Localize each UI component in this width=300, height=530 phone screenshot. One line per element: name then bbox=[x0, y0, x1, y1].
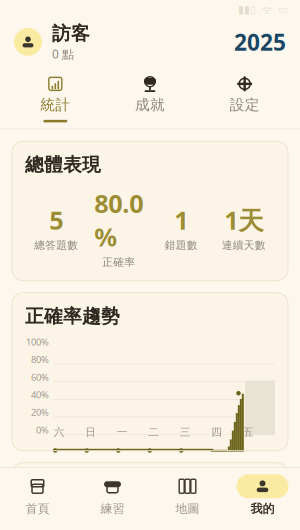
staticText: 2025 bbox=[234, 27, 286, 57]
staticText: 0 點 bbox=[52, 46, 74, 62]
staticText: 75% bbox=[251, 508, 275, 524]
staticText: 交通法規 bbox=[25, 507, 85, 525]
staticText: ▮▮▯ ᯤ ▭ bbox=[238, 2, 288, 16]
staticText: 五 bbox=[243, 426, 254, 439]
staticText: 正確率 bbox=[102, 256, 135, 269]
button[interactable]: 我的 bbox=[225, 468, 300, 516]
button[interactable]: 成就 bbox=[103, 70, 197, 128]
button[interactable]: 首頁 bbox=[0, 468, 75, 516]
staticText: 錯題數 bbox=[165, 239, 198, 252]
staticText: 一 bbox=[117, 426, 128, 439]
staticText: 總體表現 bbox=[25, 153, 101, 176]
staticText: 我的 bbox=[250, 501, 274, 516]
staticText: 1 bbox=[174, 203, 188, 237]
staticText: 日 bbox=[85, 426, 96, 439]
staticText: 5 bbox=[49, 203, 63, 237]
staticText: 成就 bbox=[135, 96, 165, 114]
staticText: 分類統計 bbox=[25, 475, 101, 498]
staticText: 練習 bbox=[100, 501, 124, 516]
staticText: 二 bbox=[148, 426, 159, 439]
button[interactable]: 統計 bbox=[8, 70, 103, 128]
staticText: 80% bbox=[31, 353, 49, 366]
staticText: 設定 bbox=[230, 96, 260, 114]
button[interactable]: 練習 bbox=[75, 468, 150, 516]
staticText: 1天 bbox=[224, 203, 263, 237]
staticText: 三 bbox=[180, 426, 191, 439]
staticText: 60% bbox=[31, 371, 49, 383]
staticText: 訪客 bbox=[52, 22, 90, 45]
staticText: 正確率趨勢 bbox=[25, 305, 120, 328]
staticText: 連續天數 bbox=[222, 239, 266, 252]
staticText: 100% bbox=[26, 336, 49, 348]
staticText: 0% bbox=[36, 424, 49, 436]
staticText: 六 bbox=[54, 426, 65, 439]
staticText: 首頁 bbox=[25, 501, 49, 516]
staticText: 地圖 bbox=[175, 501, 199, 516]
staticText: 40% bbox=[31, 388, 49, 401]
staticText: 80.0% bbox=[94, 186, 143, 254]
button[interactable]: 地圖 bbox=[150, 468, 225, 516]
staticText: 總答題數 bbox=[34, 239, 78, 252]
button[interactable]: 設定 bbox=[197, 70, 292, 128]
staticText: 統計 bbox=[40, 96, 70, 114]
staticText: 20% bbox=[31, 406, 49, 418]
staticText: 四 bbox=[211, 426, 222, 439]
